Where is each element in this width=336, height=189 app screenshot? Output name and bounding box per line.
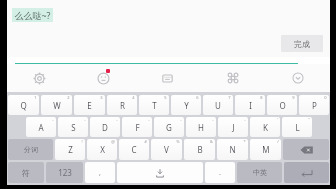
button[interactable]: N <box>217 139 248 160</box>
staticText: V <box>164 144 169 155</box>
button[interactable]: T <box>139 95 169 115</box>
staticText: A <box>38 122 44 133</box>
staticText: - <box>244 117 246 122</box>
staticText: * <box>243 139 246 144</box>
staticText: 6 <box>196 95 199 100</box>
staticText: G <box>166 122 172 133</box>
button[interactable]: 中英 <box>237 162 282 183</box>
button[interactable]: P <box>299 95 329 115</box>
button[interactable]: Emoji <box>71 64 135 92</box>
button[interactable]: F <box>122 117 152 137</box>
button[interactable]: D <box>90 117 120 137</box>
staticText: M <box>262 144 270 155</box>
button[interactable]: Hide keyboard <box>265 64 330 92</box>
button[interactable]: Enter <box>284 162 329 183</box>
button[interactable]: Y <box>171 95 201 115</box>
button[interactable]: H <box>186 117 216 137</box>
staticText: % <box>176 139 180 144</box>
button[interactable]: V <box>151 139 182 160</box>
button[interactable]: Backspace <box>283 139 329 160</box>
staticText: - <box>84 117 86 122</box>
button[interactable]: E <box>74 95 105 115</box>
button[interactable]: U <box>203 95 233 115</box>
button[interactable]: O <box>267 95 297 115</box>
staticText: 1 <box>34 95 37 100</box>
staticText: I <box>249 100 252 111</box>
button[interactable]: R <box>107 95 137 115</box>
staticText: - <box>116 117 118 122</box>
staticText: K <box>263 122 268 133</box>
button[interactable]: G <box>154 117 184 137</box>
staticText: Q <box>20 100 27 111</box>
staticText: - <box>148 117 150 122</box>
staticText: 0 <box>324 95 327 100</box>
staticText: 么么哒~? <box>14 9 51 21</box>
staticText: J <box>232 122 235 133</box>
staticText: O <box>279 100 286 111</box>
staticText: / <box>277 139 279 144</box>
button[interactable]: J <box>218 117 248 137</box>
staticText: E <box>87 100 92 111</box>
staticText: - <box>52 117 54 122</box>
button[interactable]: I <box>235 95 265 115</box>
staticText: 7 <box>228 95 231 100</box>
staticText: - <box>180 117 182 122</box>
staticText: # <box>144 139 147 144</box>
button[interactable]: B <box>184 139 215 160</box>
staticText: 符 <box>22 168 30 178</box>
button[interactable]: A <box>26 117 56 137</box>
staticText: 分词 <box>24 145 38 154</box>
staticText: 5 <box>164 95 167 100</box>
staticText: 3 <box>100 95 103 100</box>
button[interactable]: 符 <box>8 162 44 183</box>
button[interactable]: 分词 <box>8 139 53 160</box>
staticText: 中英 <box>253 168 267 177</box>
button[interactable]: Keyboard layout <box>135 64 200 92</box>
button[interactable]: L <box>282 117 312 137</box>
button[interactable]: W <box>41 95 72 115</box>
staticText: , <box>99 168 101 178</box>
staticText: 2 <box>67 95 70 100</box>
staticText: - <box>212 117 214 122</box>
staticText: N <box>229 144 236 155</box>
button[interactable]: Settings <box>7 64 71 92</box>
staticText: L <box>295 122 300 133</box>
staticText: D <box>102 122 108 133</box>
staticText: B <box>197 144 203 155</box>
staticText: . <box>219 168 221 178</box>
staticText: & <box>210 139 213 144</box>
staticText: " <box>308 117 310 122</box>
button[interactable]: , <box>85 162 115 183</box>
button[interactable]: Q <box>8 95 39 115</box>
staticText: W <box>53 100 61 111</box>
staticText: 9 <box>292 95 295 100</box>
button[interactable]: Shortcuts <box>200 64 265 92</box>
button[interactable]: 123 <box>46 162 83 183</box>
staticText: P <box>312 100 317 111</box>
button[interactable]: C <box>119 139 149 160</box>
staticText: T <box>152 100 157 111</box>
staticText: S <box>71 122 76 133</box>
staticText: C <box>131 144 137 155</box>
staticText: U <box>215 100 221 111</box>
button[interactable]: M <box>250 139 281 160</box>
button[interactable]: . <box>205 162 235 183</box>
staticText: 8 <box>260 95 263 100</box>
button[interactable]: S <box>58 117 88 137</box>
staticText: ' <box>277 117 278 122</box>
staticText: X <box>100 144 105 155</box>
staticText: 完成 <box>294 39 310 49</box>
staticText: ! <box>81 139 83 144</box>
staticText: 123 <box>58 167 72 178</box>
staticText: R <box>120 100 125 111</box>
staticText: @ <box>111 139 115 144</box>
button[interactable]: X <box>87 139 117 160</box>
button[interactable]: 完成 <box>281 35 323 52</box>
button[interactable]: Space <box>117 162 203 183</box>
staticText: Z <box>68 144 73 155</box>
staticText: 4 <box>132 95 135 100</box>
staticText: Y <box>184 100 189 111</box>
button[interactable]: K <box>250 117 280 137</box>
button[interactable]: Z <box>55 139 85 160</box>
staticText: H <box>198 122 204 133</box>
